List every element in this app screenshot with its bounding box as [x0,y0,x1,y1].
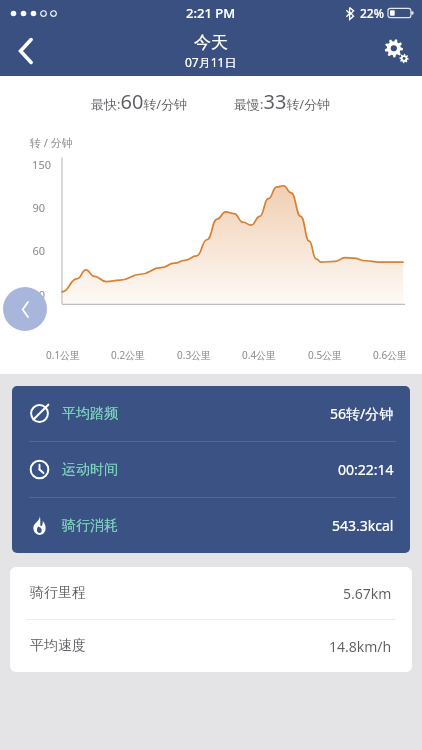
staticText: 543.3kcal [332,516,394,535]
staticText: 22% [360,5,384,21]
staticText: 平均踏频 [62,405,118,423]
staticText: 平均速度 [30,637,86,655]
button[interactable]: 平均速度 [10,620,412,672]
button[interactable]: Previous [3,287,47,331]
staticText: 运动时间 [62,461,118,479]
staticText: 90 [32,200,45,215]
button[interactable]: 运动时间 [12,442,410,497]
staticText: 50 [32,287,45,302]
staticText: 0.2公里 [111,348,146,362]
staticText: 0.6公里 [373,348,408,362]
staticText: 2:21 PM [186,4,236,22]
staticText: 转 / 分钟 [30,135,73,150]
staticText: 0.5公里 [308,348,343,362]
staticText: 0.1公里 [46,348,81,362]
button[interactable]: 骑行里程 [10,567,412,619]
staticText: 0.3公里 [177,348,212,362]
staticText: 骑行里程 [30,584,86,602]
button[interactable]: 骑行消耗 [12,498,410,553]
button[interactable]: Settings [370,26,422,76]
staticText: 今天 [194,32,228,53]
staticText: 07月11日 [185,54,237,70]
staticText: 骑行消耗 [62,517,118,535]
staticText: 14.8km/h [329,637,392,656]
button[interactable]: Back [0,26,52,76]
button[interactable]: 平均踏频 [12,386,410,441]
staticText: 150 [32,157,51,172]
staticText: 5.67km [343,584,392,603]
staticText: 60 [32,243,45,258]
staticText: 最慢:33转/分钟 [234,88,331,115]
staticText: 0.4公里 [242,348,277,362]
staticText: 最快:60转/分钟 [91,88,188,115]
staticText: 00:22:14 [338,460,394,479]
staticText: 56转/分钟 [330,404,394,423]
